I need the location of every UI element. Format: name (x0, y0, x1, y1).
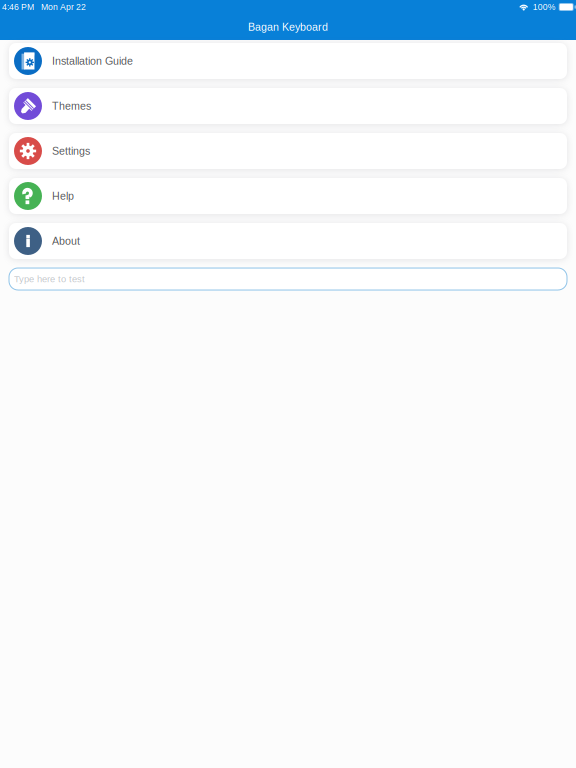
staticText: Settings (52, 145, 90, 157)
button[interactable]: Themes (9, 88, 567, 124)
staticText: About (52, 235, 80, 247)
staticText: Bagan Keyboard (248, 21, 328, 33)
staticText: Help (52, 190, 74, 202)
staticText: Mon Apr 22 (41, 2, 86, 12)
staticText: Installation Guide (52, 55, 133, 67)
staticText: Type here to test (14, 274, 85, 284)
staticText: Themes (52, 100, 91, 112)
staticText: 100% (533, 2, 556, 12)
staticText: 4:46 PM (2, 2, 34, 12)
button[interactable]: About (9, 223, 567, 259)
button[interactable]: Type here to test (9, 268, 567, 290)
button[interactable]: Installation Guide (9, 43, 567, 79)
button[interactable]: Help (9, 178, 567, 214)
button[interactable]: Settings (9, 133, 567, 169)
